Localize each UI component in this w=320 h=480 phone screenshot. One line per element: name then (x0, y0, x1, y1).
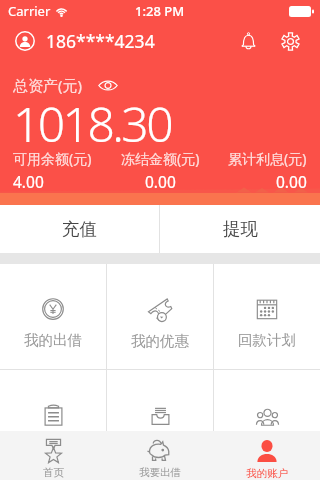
staticText: 可用余额(元) (13, 149, 92, 168)
staticText: 0.00 (276, 171, 307, 192)
staticText: 冻结金额(元) (121, 149, 200, 168)
staticText: 充值 (62, 218, 97, 240)
staticText: 回款计划 (238, 331, 296, 349)
button[interactable]: 提现 (160, 205, 320, 253)
button[interactable]: 我的账户 (213, 431, 320, 480)
button[interactable]: Inbox (107, 370, 213, 475)
button[interactable]: 首页 (0, 431, 106, 480)
staticText: 我的优惠 (131, 332, 189, 350)
staticText: 我的账户 (246, 467, 288, 480)
button[interactable]: 回款计划 (214, 264, 320, 369)
button[interactable]: 我要出借 (106, 431, 213, 480)
staticText: 我要出借 (139, 466, 181, 479)
button[interactable]: 我的优惠 (107, 264, 213, 369)
staticText: 1018.30 (13, 91, 171, 156)
button[interactable]: Notifications (229, 22, 267, 60)
staticText: 0.00 (145, 171, 176, 192)
staticText: Carrier (8, 2, 51, 20)
staticText: 186****4234 (46, 29, 155, 53)
staticText: 1:28 PM (135, 2, 185, 20)
staticText: 总资产(元) (13, 75, 83, 95)
button[interactable]: Settings (271, 22, 309, 60)
button[interactable]: 我的出借 (0, 264, 106, 369)
staticText: 我的出借 (24, 331, 82, 349)
staticText: 累计利息(元) (228, 149, 307, 168)
staticText: 首页 (43, 466, 64, 479)
staticText: 提现 (223, 218, 258, 240)
button[interactable]: Invite friends (214, 370, 320, 475)
staticText: 4.00 (13, 171, 44, 192)
button[interactable]: Toggle balance (98, 79, 118, 92)
button[interactable]: 充值 (0, 205, 159, 253)
button[interactable]: Statements (0, 370, 106, 475)
